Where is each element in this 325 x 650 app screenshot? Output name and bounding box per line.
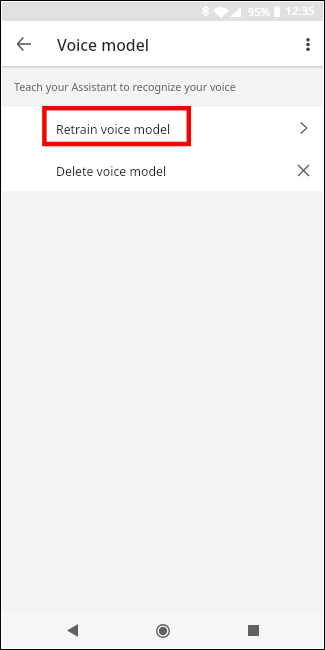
button[interactable]: Recent apps — [234, 612, 272, 649]
staticText: Retrain voice model — [56, 121, 171, 138]
staticText: Teach your Assistant to recognize your v… — [14, 80, 236, 95]
button[interactable]: Delete voice model — [1, 149, 324, 191]
button[interactable]: Navigate up — [4, 24, 44, 64]
staticText: 12:35 — [285, 3, 315, 19]
staticText: Voice model — [57, 34, 149, 56]
button[interactable]: Retrain voice model — [1, 107, 324, 149]
button[interactable]: Back — [53, 612, 91, 649]
staticText: 95% — [248, 4, 270, 19]
button[interactable]: More options — [288, 24, 325, 64]
button[interactable]: Retrain voice model — [292, 117, 314, 139]
staticText: Delete voice model — [56, 163, 167, 180]
button[interactable]: Delete voice model — [292, 159, 314, 181]
button[interactable]: Home — [144, 612, 182, 649]
